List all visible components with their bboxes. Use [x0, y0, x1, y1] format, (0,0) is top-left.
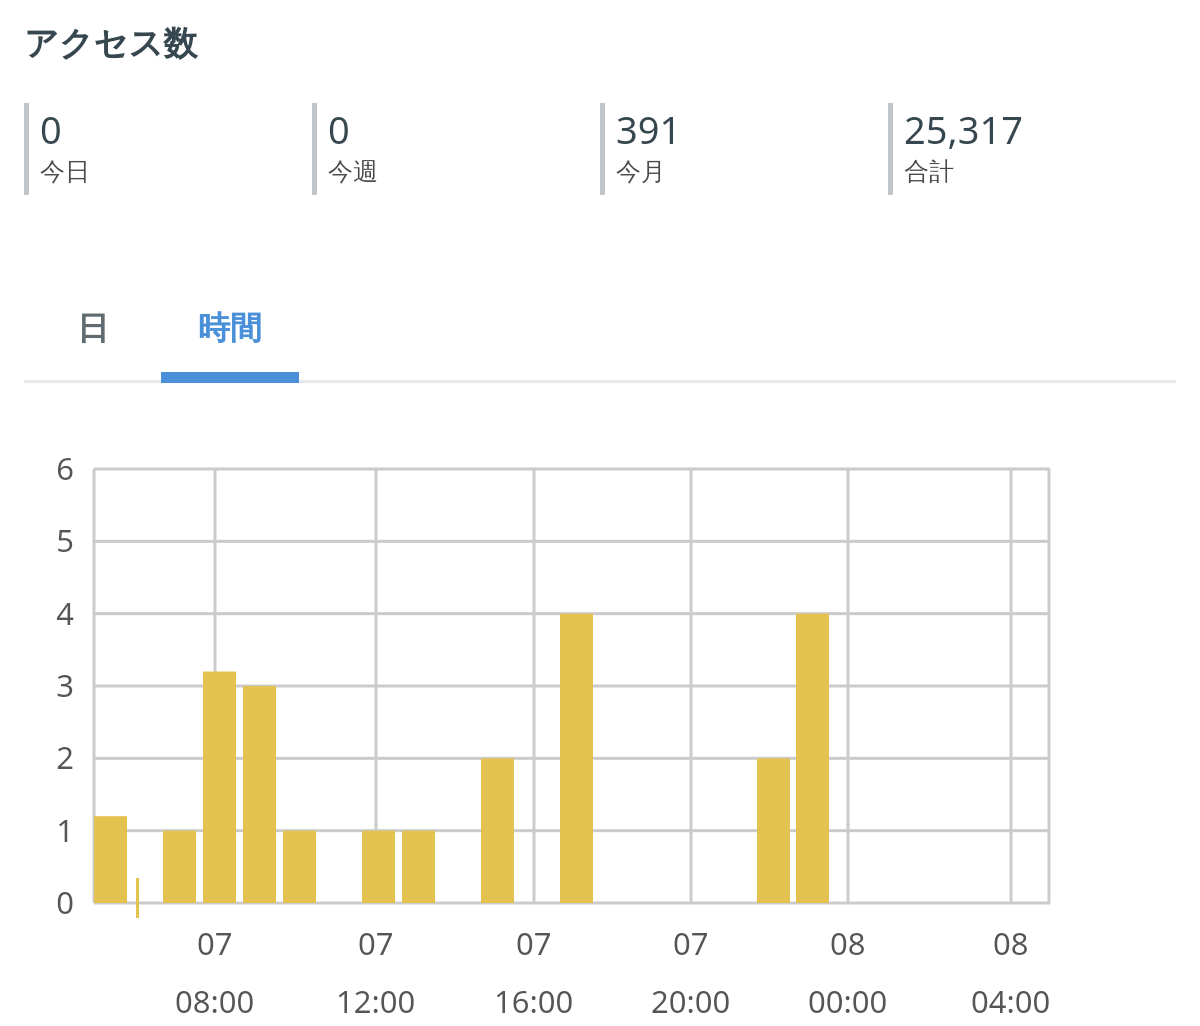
staticText: 1 [44, 809, 74, 851]
staticText: 0 [44, 881, 74, 923]
staticText: 07 [673, 922, 709, 964]
staticText: 6 [44, 447, 74, 489]
button[interactable]: 25,317 [888, 103, 1168, 195]
staticText: 391 [616, 103, 682, 155]
staticText: 00:00 [808, 980, 888, 1022]
staticText: アクセス数 [24, 22, 198, 65]
staticText: 08 [830, 922, 866, 964]
staticText: 今月 [616, 156, 666, 187]
staticText: 12:00 [336, 980, 416, 1022]
staticText: 今日 [40, 156, 90, 187]
staticText: 0 [328, 103, 350, 155]
staticText: 07 [358, 922, 394, 964]
button[interactable]: 0 [312, 103, 592, 195]
staticText: 0 [40, 103, 62, 155]
staticText: 今週 [328, 156, 378, 187]
staticText: 08 [993, 922, 1029, 964]
staticText: 日 [77, 308, 109, 348]
staticText: 04:00 [971, 980, 1051, 1022]
staticText: 20:00 [651, 980, 731, 1022]
staticText: 2 [44, 736, 74, 778]
staticText: 合計 [904, 156, 954, 187]
staticText: 08:00 [175, 980, 255, 1022]
staticText: 07 [197, 922, 233, 964]
staticText: 25,317 [904, 103, 1023, 155]
staticText: 07 [516, 922, 552, 964]
button[interactable]: 0 [24, 103, 304, 195]
staticText: 4 [44, 592, 74, 634]
staticText: 3 [44, 664, 74, 706]
staticText: 5 [44, 519, 74, 561]
staticText: 時間 [198, 308, 262, 348]
button[interactable]: 391 [600, 103, 880, 195]
button[interactable]: 時間 [161, 282, 299, 374]
button[interactable]: 日 [24, 282, 161, 374]
staticText: 16:00 [494, 980, 574, 1022]
